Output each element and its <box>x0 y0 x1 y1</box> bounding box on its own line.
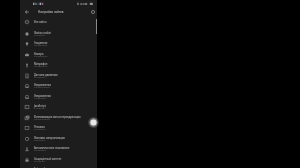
button[interactable]: Назад <box>20 7 33 17</box>
button[interactable]: Датчики движения <box>20 69 97 80</box>
button[interactable]: Файлы cookie <box>20 27 97 38</box>
staticText: Уведомления <box>34 94 51 97</box>
button[interactable]: Камера <box>20 48 97 59</box>
staticText: Разрешить <box>34 34 46 37</box>
staticText: Разрешено <box>34 107 46 110</box>
staticText: Реклама <box>34 125 45 128</box>
button[interactable]: Все сайты <box>20 16 97 27</box>
button[interactable]: Защищённый контент <box>20 153 97 164</box>
staticText: Разрешено <box>34 128 46 131</box>
staticText: Автоматическое скачивание <box>34 146 70 149</box>
staticText: Разрешено <box>34 76 46 79</box>
staticText: Файлы cookie <box>34 31 51 34</box>
staticText: Запрашивать <box>34 65 48 68</box>
staticText: Камера <box>34 52 44 55</box>
staticText: Заблокировано <box>34 86 50 89</box>
staticText: Буфер обмена <box>34 167 52 168</box>
button[interactable]: Уведомления <box>20 79 97 90</box>
staticText: Фоновая синхронизация <box>34 136 65 139</box>
staticText: Разрешено <box>34 139 46 142</box>
button[interactable]: Всплывающие окна и переадресация <box>20 111 97 122</box>
staticText: Спрашивать <box>34 97 47 100</box>
staticText: Заблокировано <box>34 118 50 121</box>
button[interactable]: Реклама <box>20 121 97 132</box>
staticText: JavaScript <box>34 104 46 107</box>
button[interactable]: Справка <box>88 7 98 17</box>
button[interactable]: Фоновая синхронизация <box>20 132 97 143</box>
button[interactable]: Буфер обмена <box>20 163 97 168</box>
staticText: Настройки сайтов <box>38 10 64 14</box>
staticText: Защищённый контент <box>34 157 62 160</box>
staticText: Запрашивать <box>34 55 48 58</box>
staticText: Всплывающие окна и переадресация <box>34 115 81 118</box>
staticText: Микрофон <box>34 62 48 65</box>
staticText: Датчики движения <box>34 73 58 76</box>
staticText: Запрашивать <box>34 44 48 47</box>
button[interactable]: JavaScript <box>20 100 97 111</box>
staticText: Все сайты <box>34 20 47 23</box>
staticText: Разрешено <box>34 160 46 163</box>
button[interactable]: Автоматическое скачивание <box>20 142 97 153</box>
staticText: Уведомления <box>34 83 51 86</box>
button[interactable]: Микрофон <box>20 58 97 69</box>
staticText: Спрашивать <box>34 149 47 152</box>
button[interactable]: Геоданные <box>20 37 97 48</box>
button[interactable]: Уведомления <box>20 90 97 101</box>
staticText: Геоданные <box>34 41 48 44</box>
